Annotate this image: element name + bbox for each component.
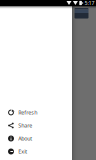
- button[interactable]: Share: [0, 119, 72, 132]
- staticText: Share: [18, 122, 32, 129]
- staticText: About: [18, 135, 32, 142]
- staticText: Exit: [18, 148, 27, 155]
- staticText: Refresh: [18, 109, 37, 116]
- button[interactable]: Exit: [0, 145, 72, 158]
- staticText: 5:17: [84, 0, 94, 7]
- button[interactable]: About: [0, 132, 72, 145]
- button[interactable]: Dismiss menu: [0, 0, 96, 160]
- button[interactable]: Refresh: [0, 106, 72, 119]
